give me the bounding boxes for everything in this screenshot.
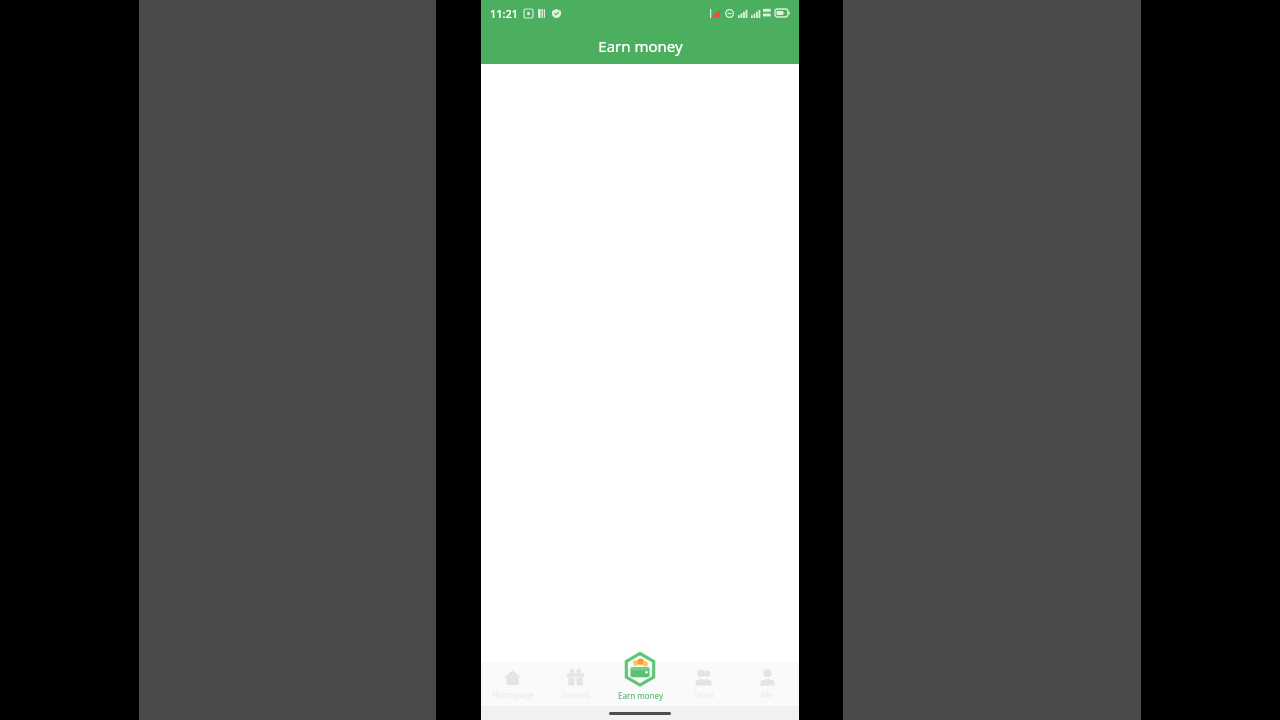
staticText: Me: [761, 689, 773, 700]
staticText: Team: [693, 689, 714, 700]
button[interactable]: Homepage: [481, 662, 544, 706]
staticText: Earn money: [618, 690, 663, 701]
button[interactable]: Me: [735, 662, 799, 706]
staticText: Earn money: [598, 36, 683, 56]
button[interactable]: Team: [671, 662, 735, 706]
staticText: Reward: [561, 689, 590, 700]
staticText: Homepage: [492, 689, 534, 700]
staticText: 11:21: [490, 6, 519, 21]
button[interactable]: Earn money: [608, 651, 672, 706]
button[interactable]: Reward: [544, 662, 607, 706]
